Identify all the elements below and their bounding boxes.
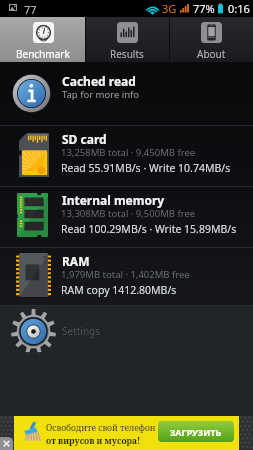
button[interactable]: ЗАГРУЗИТЬ [158, 421, 234, 442]
button[interactable]: RAM [0, 247, 253, 305]
button[interactable]: Results [85, 17, 169, 63]
button[interactable]: Cached read [0, 63, 253, 125]
staticText: Benchmark [16, 47, 70, 61]
staticText: Освободите свой телефон [46, 422, 156, 434]
staticText: Results [110, 47, 144, 61]
staticText: 3G [162, 1, 177, 16]
staticText: 77 [24, 2, 37, 17]
staticText: SD card [62, 131, 107, 147]
staticText: 13,308MB total · 9,500MB free [61, 207, 196, 220]
staticText: 13,258MB total · 9,450MB free [61, 146, 196, 159]
staticText: Tap for more info [62, 88, 140, 101]
button[interactable]: SD card [0, 125, 253, 186]
staticText: Cached read [62, 73, 136, 89]
button[interactable]: Settings [0, 305, 253, 352]
staticText: 0:16 [228, 1, 250, 16]
button[interactable]: Benchmark [0, 17, 85, 63]
staticText: Read 100.29MB/s · Write 15.89MB/s [61, 222, 237, 236]
button[interactable]: Internal memory [0, 186, 253, 247]
staticText: 77% [193, 1, 215, 16]
button[interactable]: About [169, 17, 253, 63]
staticText: Internal memory [62, 192, 165, 208]
button[interactable]: Освободите свой телефон [14, 416, 239, 450]
staticText: Settings [62, 324, 101, 338]
staticText: Read 55.91MB/s · Write 10.74MB/s [61, 161, 231, 175]
staticText: RAM copy 1412.80MB/s [61, 283, 177, 297]
staticText: RAM [62, 253, 90, 269]
staticText: 1,979MB total · 1,402MB free [61, 268, 190, 281]
button[interactable]: Close ad [0, 437, 13, 450]
staticText: ЗАГРУЗИТЬ [170, 426, 222, 438]
staticText: от вирусов и мусора! [46, 435, 141, 447]
staticText: About [197, 47, 226, 61]
